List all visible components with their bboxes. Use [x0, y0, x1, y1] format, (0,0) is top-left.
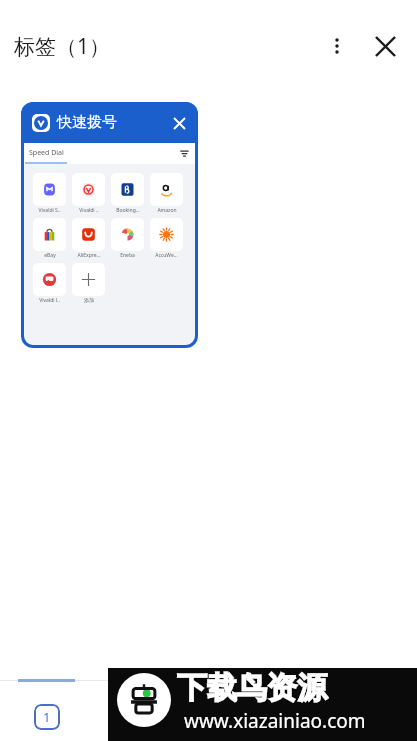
- staticText: 下载鸟资源: [177, 669, 327, 707]
- button[interactable]: More options: [315, 24, 359, 68]
- button[interactable]: Eneba: [108, 218, 147, 259]
- staticText: Vivaldi ..: [79, 207, 99, 214]
- staticText: Booking...: [116, 207, 140, 214]
- staticText: Vivaldi l..: [39, 297, 60, 304]
- button[interactable]: Close tab: [164, 108, 194, 138]
- button[interactable]: 添加: [69, 263, 108, 303]
- button[interactable]: Private tabs: [97, 697, 154, 737]
- button[interactable]: Tabs, 1 open: [18, 697, 75, 737]
- button[interactable]: eBay: [30, 218, 69, 259]
- button[interactable]: 快速拨号: [21, 102, 198, 348]
- button[interactable]: Vivaldi ..: [69, 173, 108, 214]
- staticText: eBay: [44, 252, 56, 259]
- button[interactable]: AccuWe...: [147, 218, 186, 259]
- staticText: Speed Dial: [29, 148, 64, 158]
- staticText: www.xiazainiao.com: [184, 708, 366, 734]
- staticText: 1: [43, 708, 51, 726]
- staticText: 添加: [84, 297, 94, 303]
- staticText: 标签（1）: [14, 32, 111, 61]
- button[interactable]: Booking...: [108, 173, 147, 214]
- staticText: Amazon: [157, 207, 177, 214]
- button[interactable]: AliExpre...: [69, 218, 108, 259]
- staticText: AliExpre...: [77, 252, 101, 259]
- button[interactable]: Vivaldi l..: [30, 263, 69, 304]
- staticText: 快速拨号: [57, 113, 117, 132]
- button[interactable]: Vivaldi S..: [30, 173, 69, 214]
- staticText: Eneba: [120, 252, 135, 259]
- staticText: AccuWe...: [155, 252, 178, 259]
- staticText: Vivaldi S..: [38, 207, 61, 214]
- button[interactable]: Amazon: [147, 173, 186, 214]
- button[interactable]: Close: [359, 20, 411, 72]
